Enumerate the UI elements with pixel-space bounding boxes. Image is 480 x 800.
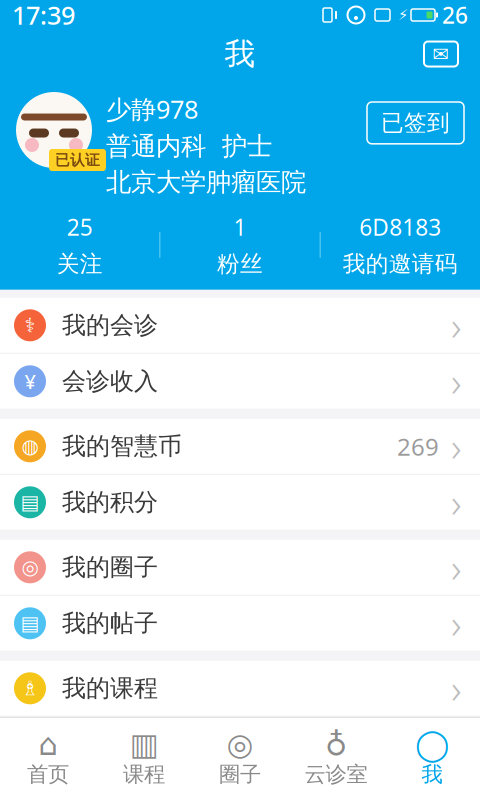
staticText: 26 [442,0,468,30]
staticText: 圈子 [219,761,261,788]
staticText: ▤ [20,612,39,635]
staticText: › [451,420,462,473]
staticText: › [451,476,462,529]
staticText: 关注 [57,250,103,278]
staticText: 已认证 [55,151,100,169]
staticText: › [451,662,462,715]
staticText: ◍ [21,435,38,458]
staticText: 25 [67,212,93,242]
button[interactable]: ◎ [192,718,288,800]
staticText: ♁ [325,727,347,762]
staticText: 我 [224,35,255,73]
button[interactable]: ▤ [0,475,480,530]
staticText: ♗ [21,677,39,700]
button[interactable]: 25 [0,212,159,278]
staticText: 已签到 [381,109,450,137]
staticText: 269 [397,430,439,462]
button[interactable]: 已签到 [367,102,464,144]
staticText: 我的积分 [62,488,158,517]
staticText: › [451,597,462,650]
staticText: ¥ [24,368,35,395]
staticText: 我的邀请码 [343,250,458,278]
staticText: ◯ [415,727,449,762]
button[interactable]: ◯ [384,718,480,800]
staticText: 1 [233,212,246,242]
button[interactable]: ◍ [0,419,480,475]
staticText: 我的帖子 [62,609,158,638]
staticText: 17:39 [12,0,75,32]
staticText: ⚕ [24,314,35,337]
staticText: 我 [421,761,442,788]
staticText: ⚡︎ [398,7,408,23]
staticText: 北京大学肿瘤医院 [106,167,306,198]
staticText: 会诊收入 [62,367,158,396]
staticText: › [451,299,462,352]
staticText: ▥ [129,727,158,762]
button[interactable]: 消息 [418,34,464,74]
button[interactable]: ⌂ [0,718,96,800]
button[interactable]: 1 [160,212,320,278]
button[interactable]: ¥ [0,354,480,409]
button[interactable]: 6D8183 [321,212,480,278]
staticText: 粉丝 [217,250,263,278]
staticText: 6D8183 [359,212,441,242]
staticText: ◎ [21,556,38,579]
staticText: 我的圈子 [62,553,158,582]
button[interactable]: ⚕ [0,298,480,354]
staticText: ◎ [226,727,253,762]
staticText: 普通内科 护士 [106,131,272,162]
staticText: 我的会诊 [62,311,158,340]
button[interactable]: ▤ [0,596,480,651]
button[interactable]: ◎ [0,540,480,596]
staticText: › [451,355,462,408]
staticText: ▤ [20,491,39,514]
staticText: 课程 [123,761,165,788]
button[interactable]: ▥ [96,718,192,800]
staticText: › [451,541,462,594]
staticText: 我的课程 [62,674,158,703]
staticText: 首页 [27,761,69,788]
staticText: 云诊室 [304,761,367,788]
button[interactable]: ♁ [288,718,384,800]
staticText: ✉ [432,43,449,65]
button[interactable]: ♗ [0,661,480,717]
staticText: 我的智慧币 [62,432,182,461]
staticText: ⌂ [38,727,57,762]
staticText: 少静978 [106,92,198,126]
